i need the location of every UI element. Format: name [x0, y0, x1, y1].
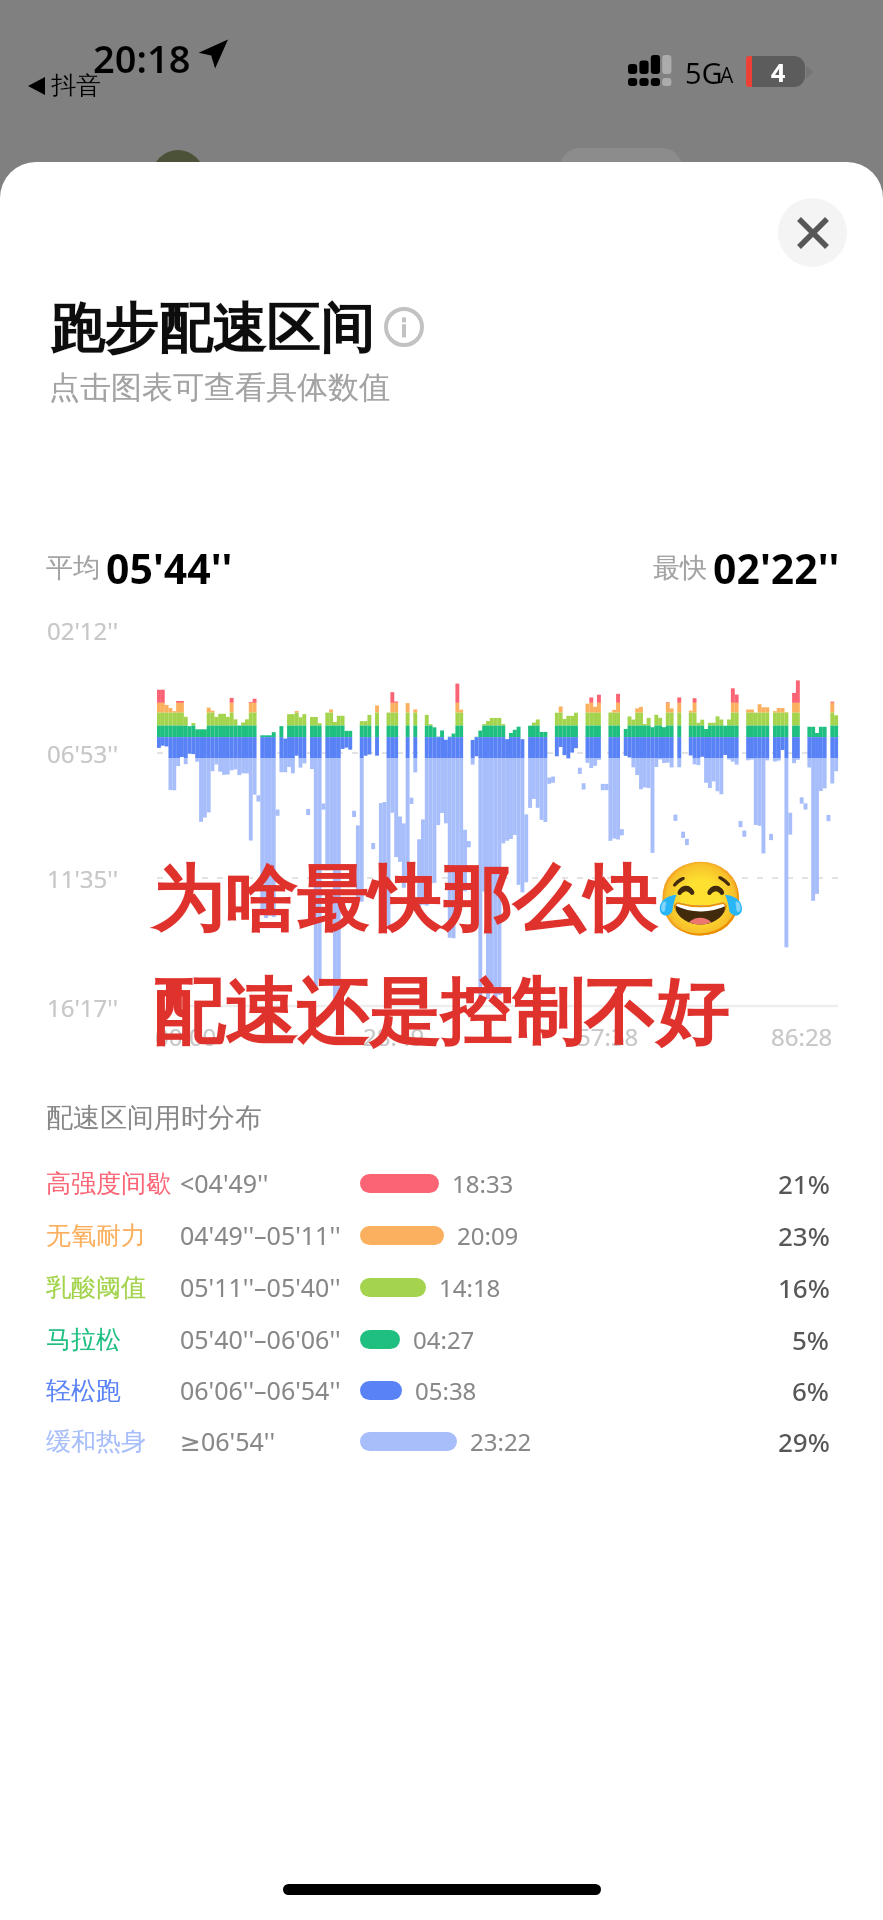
- button[interactable]: 缓和热身: [30, 1415, 850, 1467]
- staticText: 配速区间用时分布: [46, 1101, 262, 1135]
- staticText: 高强度间歇: [46, 1168, 171, 1199]
- button[interactable]: Close: [778, 198, 847, 267]
- staticText: 平均: [46, 551, 100, 585]
- staticText: 05'11''–05'40'': [180, 1270, 341, 1304]
- staticText: 11'35'': [47, 862, 119, 895]
- staticText: 04'49''–05'11'': [180, 1218, 341, 1252]
- button[interactable]: 轻松跑: [30, 1364, 850, 1416]
- staticText: 05'40''–06'06'': [180, 1322, 341, 1356]
- staticText: 马拉松: [46, 1324, 121, 1355]
- staticText: 23%: [778, 1218, 830, 1253]
- staticText: 缓和热身: [46, 1426, 146, 1457]
- staticText: 4: [771, 56, 786, 86]
- button[interactable]: 高强度间歇: [30, 1157, 850, 1209]
- staticText: 配速还是控制不好: [152, 968, 728, 1059]
- staticText: 05'44'': [106, 540, 233, 596]
- staticText: 14:18: [439, 1271, 501, 1304]
- staticText: 02'22'': [713, 540, 840, 596]
- staticText: 5%: [792, 1322, 830, 1357]
- staticText: 16%: [778, 1270, 830, 1305]
- button[interactable]: 马拉松: [30, 1313, 850, 1365]
- staticText: 86:28: [771, 1020, 833, 1053]
- staticText: 轻松跑: [46, 1375, 121, 1406]
- staticText: 6%: [792, 1373, 830, 1408]
- staticText: 18:33: [452, 1167, 514, 1200]
- staticText: 06'53'': [47, 737, 119, 770]
- staticText: 20:18: [93, 32, 191, 84]
- staticText: 29%: [778, 1424, 830, 1459]
- staticText: A: [720, 61, 734, 90]
- staticText: 为啥最快那么快😂: [152, 855, 746, 946]
- staticText: 02'12'': [47, 614, 119, 647]
- staticText: 跑步配速区间: [50, 295, 374, 363]
- staticText: 点击图表可查看具体数值: [49, 368, 390, 407]
- staticText: 05:38: [415, 1374, 477, 1407]
- button[interactable]: 乳酸阈值: [30, 1261, 850, 1313]
- staticText: <04'49'': [180, 1166, 269, 1200]
- staticText: 04:27: [413, 1323, 475, 1356]
- staticText: 57:38: [577, 1020, 639, 1053]
- staticText: 20:09: [457, 1219, 519, 1252]
- staticText: 00:00: [155, 1020, 217, 1053]
- staticText: 抖音: [51, 70, 101, 101]
- staticText: 23:22: [470, 1425, 532, 1458]
- staticText: 无氧耐力: [46, 1220, 146, 1251]
- staticText: 21%: [778, 1166, 830, 1201]
- staticText: 16'17'': [47, 991, 119, 1024]
- staticText: ≥06'54'': [180, 1424, 276, 1458]
- button[interactable]: 无氧耐力: [30, 1209, 850, 1261]
- staticText: 乳酸阈值: [46, 1272, 146, 1303]
- staticText: 最快: [653, 551, 707, 585]
- staticText: 06'06''–06'54'': [180, 1373, 341, 1407]
- staticText: 5G: [685, 53, 723, 92]
- staticText: 28:49: [363, 1020, 425, 1053]
